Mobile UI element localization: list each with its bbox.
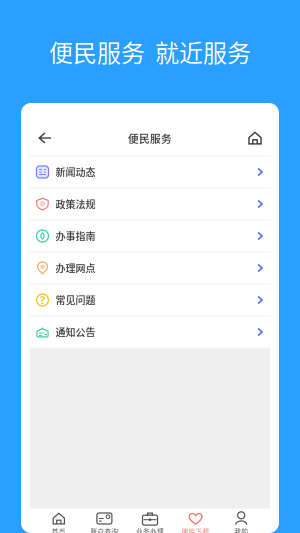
staticText: 政策法规 bbox=[55, 197, 95, 211]
button[interactable]: 办事指南 bbox=[21, 220, 279, 251]
button[interactable]: 政策法规 bbox=[21, 188, 279, 219]
staticText: 便民服务 bbox=[128, 130, 172, 146]
staticText: 常见问题 bbox=[55, 293, 95, 307]
button[interactable]: ? bbox=[21, 284, 279, 315]
staticText: 便民下载 bbox=[182, 526, 210, 533]
staticText: 便民服务 就近服务 bbox=[49, 34, 251, 69]
button[interactable]: Home bbox=[240, 123, 270, 153]
staticText: 账户查询 bbox=[90, 526, 118, 533]
staticText: 首页 bbox=[52, 526, 66, 533]
staticText: 办理网点 bbox=[55, 261, 95, 275]
button[interactable]: 账户查询 bbox=[82, 512, 127, 533]
button[interactable]: 新闻动态 bbox=[21, 156, 279, 187]
staticText: 办事指南 bbox=[55, 229, 95, 243]
button[interactable]: 我的 bbox=[218, 512, 264, 533]
button[interactable]: 办理网点 bbox=[21, 252, 279, 283]
staticText: ? bbox=[40, 293, 45, 307]
button[interactable]: 业务办理 bbox=[127, 512, 173, 533]
staticText: 业务办理 bbox=[136, 526, 164, 533]
staticText: 我的 bbox=[234, 526, 248, 533]
button[interactable]: 便民下载 bbox=[173, 512, 218, 533]
staticText: 新闻动态 bbox=[55, 165, 95, 179]
button[interactable]: 首页 bbox=[36, 512, 82, 533]
staticText: 通知公告 bbox=[55, 325, 95, 339]
button[interactable]: Back bbox=[30, 123, 60, 153]
button[interactable]: 通知公告 bbox=[21, 316, 279, 347]
